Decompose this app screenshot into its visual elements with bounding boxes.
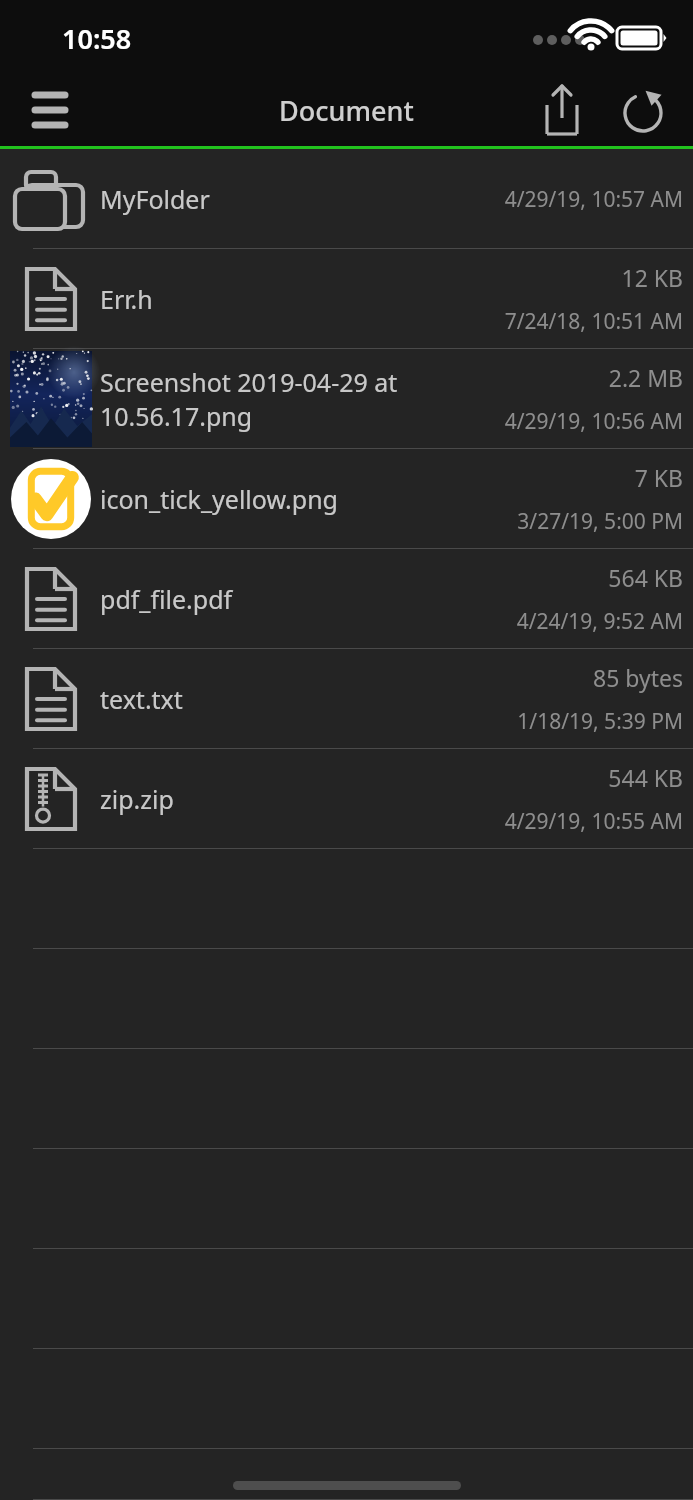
staticText: text.txt: [100, 682, 183, 716]
staticText: 4/29/19, 10:56 AM: [504, 407, 683, 436]
staticText: 3/27/19, 5:00 PM: [517, 507, 683, 536]
button[interactable]: Screenshot 2019-04-29 at 10.56.17.png: [0, 349, 693, 449]
staticText: 564 KB: [608, 562, 683, 593]
staticText: pdf_file.pdf: [100, 582, 233, 616]
staticText: 2.2 MB: [608, 362, 683, 393]
staticText: 7 KB: [634, 462, 683, 493]
button[interactable]: Err.h: [0, 249, 693, 349]
button[interactable]: pdf_file.pdf: [0, 549, 693, 649]
button[interactable]: text.txt: [0, 649, 693, 749]
staticText: 10:58: [62, 20, 132, 57]
button[interactable]: Refresh: [612, 78, 674, 142]
staticText: MyFolder: [100, 182, 210, 216]
staticText: Err.h: [100, 282, 153, 316]
staticText: 4/29/19, 10:55 AM: [504, 807, 683, 836]
staticText: 12 KB: [621, 262, 683, 293]
button[interactable]: zip.zip: [0, 749, 693, 849]
button[interactable]: MyFolder: [0, 149, 693, 249]
staticText: icon_tick_yellow.png: [100, 482, 338, 516]
staticText: 544 KB: [608, 762, 683, 793]
button[interactable]: icon_tick_yellow.png: [0, 449, 693, 549]
button[interactable]: Share: [530, 78, 592, 142]
staticText: 1/18/19, 5:39 PM: [517, 707, 683, 736]
staticText: Document: [279, 92, 414, 129]
staticText: 85 bytes: [593, 662, 683, 693]
staticText: 4/29/19, 10:57 AM: [504, 185, 683, 214]
staticText: Screenshot 2019-04-29 at 10.56.17.png: [100, 365, 398, 433]
staticText: zip.zip: [100, 782, 174, 816]
button[interactable]: Menu: [18, 82, 82, 140]
staticText: 4/24/19, 9:52 AM: [516, 607, 683, 636]
staticText: 7/24/18, 10:51 AM: [504, 307, 683, 336]
